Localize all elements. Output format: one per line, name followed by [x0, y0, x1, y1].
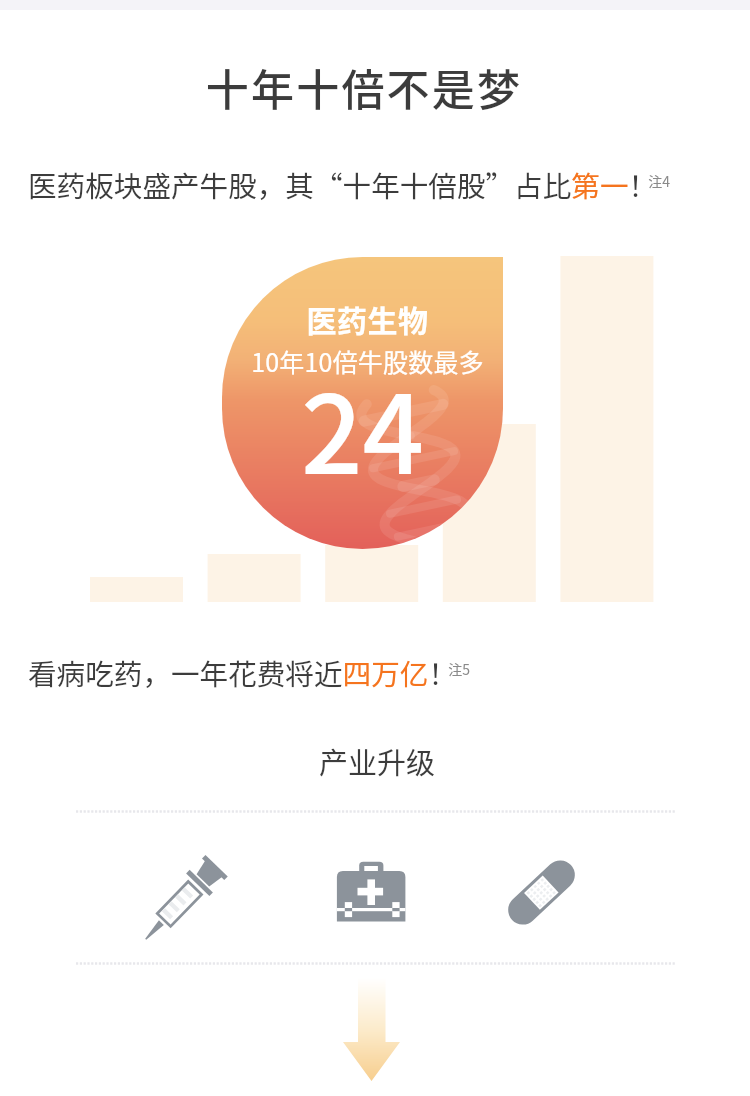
staticText: 十年十倍不是梦: [0, 56, 728, 118]
staticText: 看病吃药，一年花费将近四万亿！ 注5: [28, 652, 470, 693]
staticText: 医药生物: [227, 297, 503, 340]
button[interactable]: Medical kit: [330, 852, 414, 942]
staticText: 医药板块盛产牛股，其“十年十倍股”占比第一！ 注4: [28, 164, 671, 205]
staticText: 10年10倍牛股数最多: [227, 343, 503, 379]
staticText: 24: [222, 349, 503, 505]
button[interactable]: Syringe: [138, 848, 236, 946]
button[interactable]: Bandage: [503, 855, 580, 930]
staticText: 产业升级: [2, 740, 750, 782]
